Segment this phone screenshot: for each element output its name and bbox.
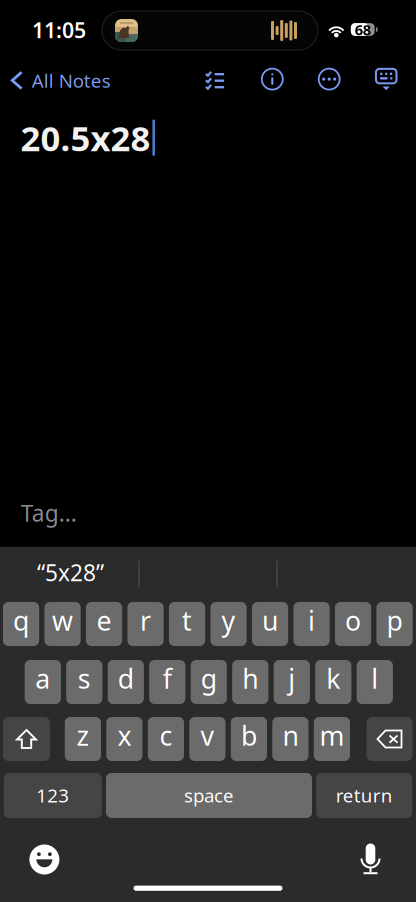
staticText: 11:05	[32, 16, 86, 44]
staticText: return	[336, 783, 393, 808]
staticText: x	[117, 718, 131, 753]
staticText: f	[163, 661, 172, 696]
staticText: g	[201, 661, 217, 696]
button[interactable]: m	[314, 717, 350, 761]
button[interactable]: 123	[4, 773, 102, 818]
staticText: y	[222, 603, 236, 638]
button[interactable]: n	[272, 717, 308, 761]
staticText: o	[345, 603, 361, 638]
button[interactable]: w	[44, 602, 81, 646]
staticText: e	[97, 603, 112, 638]
button[interactable]: b	[231, 717, 267, 761]
button[interactable]: t	[169, 602, 205, 646]
button[interactable]: i	[293, 602, 330, 646]
staticText: d	[118, 661, 134, 696]
button[interactable]: Shift	[3, 717, 50, 761]
staticText: 20.5x28	[20, 115, 150, 161]
button[interactable]: v	[189, 717, 225, 761]
staticText: l	[371, 661, 378, 696]
button[interactable]: f	[149, 660, 185, 704]
button[interactable]: Delete	[366, 717, 412, 761]
staticText: a	[35, 661, 50, 696]
staticText: n	[282, 718, 298, 753]
staticText: r	[140, 603, 151, 638]
staticText: h	[242, 661, 258, 696]
staticText: v	[200, 718, 214, 753]
staticText: p	[387, 603, 403, 638]
button[interactable]: a	[25, 660, 61, 704]
staticText: s	[78, 661, 91, 696]
button[interactable]: space	[106, 773, 312, 818]
button[interactable]: h	[232, 660, 268, 704]
button[interactable]: o	[335, 602, 371, 646]
button[interactable]: g	[191, 660, 227, 704]
staticText: m	[319, 718, 344, 753]
button[interactable]: Info	[253, 60, 291, 98]
staticText: All Notes	[32, 68, 111, 93]
button[interactable]: Hide Keyboard	[367, 60, 405, 98]
staticText: c	[159, 718, 172, 753]
staticText: t	[182, 603, 192, 638]
button[interactable]: u	[252, 602, 288, 646]
button[interactable]: q	[3, 602, 39, 646]
button[interactable]: Dictation	[351, 834, 389, 883]
button[interactable]: All Notes	[10, 62, 161, 98]
staticText: k	[326, 661, 340, 696]
staticText: b	[241, 718, 257, 753]
staticText: q	[13, 603, 29, 638]
button[interactable]: c	[148, 717, 184, 761]
button[interactable]: r	[127, 602, 164, 646]
button[interactable]: s	[66, 660, 102, 704]
button[interactable]: Checklist	[196, 60, 234, 98]
button[interactable]: x	[106, 717, 142, 761]
button[interactable]: k	[315, 660, 351, 704]
button[interactable]: z	[65, 717, 101, 761]
button[interactable]: y	[210, 602, 247, 646]
staticText: 68	[355, 20, 371, 39]
button[interactable]: p	[376, 602, 413, 646]
staticText: 123	[36, 783, 69, 808]
button[interactable]: d	[108, 660, 144, 704]
staticText: space	[184, 783, 234, 808]
button[interactable]: j	[274, 660, 310, 704]
button[interactable]: return	[316, 773, 412, 818]
button[interactable]: l	[357, 660, 393, 704]
staticText: Tag...	[21, 498, 77, 528]
button[interactable]: e	[86, 602, 122, 646]
staticText: z	[76, 718, 89, 753]
staticText: u	[262, 603, 278, 638]
staticText: w	[52, 603, 73, 638]
button[interactable]: Emoji	[20, 835, 68, 883]
button[interactable]: More	[310, 60, 348, 98]
staticText: “5x28”	[37, 557, 104, 587]
staticText: i	[308, 603, 315, 638]
staticText: j	[288, 661, 295, 696]
